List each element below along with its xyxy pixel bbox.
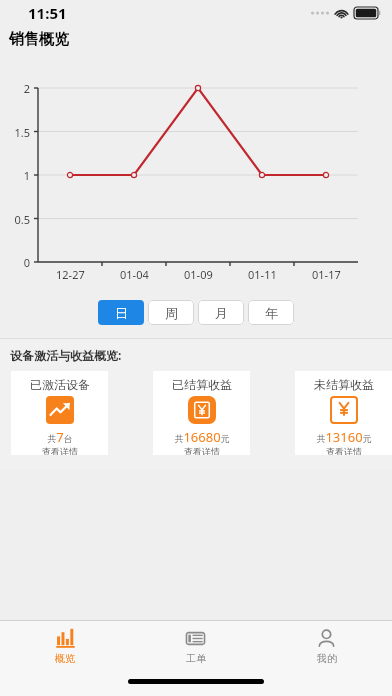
staticText: 0.5: [0, 212, 30, 227]
button[interactable]: 已激活设备: [11, 371, 108, 455]
staticText: 01-09: [184, 267, 213, 282]
staticText: 11:51: [28, 3, 67, 23]
staticText: 12-27: [56, 267, 85, 282]
staticText: 0: [0, 255, 30, 270]
other: 工单: [185, 628, 206, 649]
staticText: 01-11: [248, 267, 277, 282]
staticText: 1.5: [0, 125, 30, 140]
staticText: 工单: [186, 652, 206, 665]
button[interactable]: 我的: [261, 621, 392, 671]
staticText: 周: [165, 305, 178, 321]
other: 概览: [55, 628, 76, 649]
staticText: 查看详情: [326, 446, 362, 455]
staticText: 查看详情: [42, 446, 78, 455]
staticText: 月: [215, 305, 228, 321]
staticText: 已结算收益: [172, 377, 232, 392]
button[interactable]: 年: [248, 300, 294, 325]
button[interactable]: 月: [198, 300, 244, 325]
button[interactable]: 未结算收益: [295, 371, 392, 455]
staticText: 共7台: [47, 428, 73, 446]
staticText: 销售概览: [9, 30, 69, 49]
staticText: 日: [115, 305, 128, 321]
staticText: 年: [265, 305, 278, 321]
staticText: 概览: [55, 652, 75, 665]
button[interactable]: 工单: [130, 621, 261, 671]
button[interactable]: 概览: [0, 621, 130, 671]
staticText: 设备激活与收益概览:: [10, 347, 122, 363]
staticText: 共13160元: [316, 428, 372, 446]
staticText: 已激活设备: [30, 377, 90, 392]
staticText: 我的: [317, 652, 337, 665]
staticText: 未结算收益: [314, 377, 374, 392]
button[interactable]: 已结算收益: [153, 371, 250, 455]
staticText: 01-17: [312, 267, 341, 282]
staticText: 2: [0, 81, 30, 96]
staticText: 01-04: [120, 267, 149, 282]
staticText: 共16680元: [174, 428, 230, 446]
button[interactable]: 日: [98, 300, 144, 325]
staticText: 1: [0, 168, 30, 183]
button[interactable]: 周: [148, 300, 194, 325]
other: 我的: [316, 628, 337, 649]
staticText: 查看详情: [184, 446, 220, 455]
